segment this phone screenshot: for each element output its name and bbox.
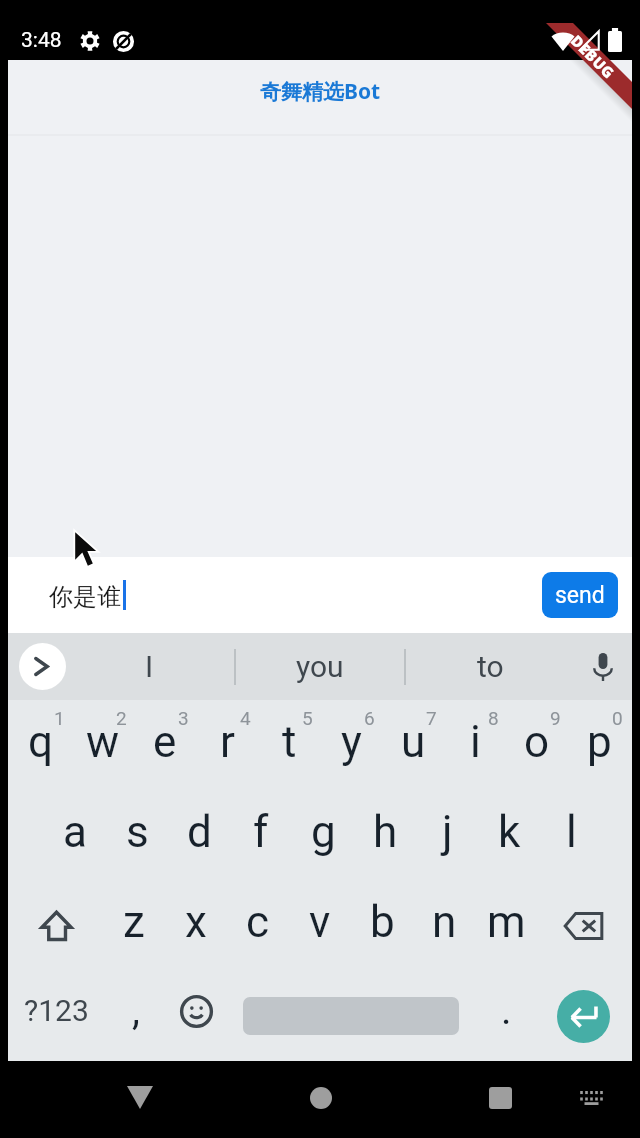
- button[interactable]: l: [540, 791, 602, 881]
- staticText: 8: [488, 707, 499, 729]
- button[interactable]: x: [165, 881, 227, 971]
- staticText: 6: [364, 707, 375, 729]
- staticText: u: [401, 716, 426, 768]
- staticText: 3:48: [21, 28, 62, 53]
- button[interactable]: u: [382, 700, 444, 791]
- staticText: d: [187, 806, 212, 858]
- staticText: 2: [116, 707, 127, 729]
- staticText: w: [86, 716, 120, 768]
- staticText: 奇舞精选Bot: [260, 77, 381, 106]
- button[interactable]: 你是谁: [49, 580, 542, 610]
- staticText: 5: [302, 707, 313, 729]
- button[interactable]: ?123: [10, 971, 103, 1061]
- staticText: z: [123, 896, 145, 948]
- button[interactable]: y: [320, 700, 382, 791]
- staticText: a: [63, 806, 87, 858]
- button[interactable]: e: [134, 700, 196, 791]
- staticText: .: [501, 987, 512, 1034]
- staticText: you: [296, 649, 344, 684]
- button[interactable]: Expand suggestions: [19, 643, 66, 690]
- staticText: o: [524, 716, 550, 768]
- button[interactable]: Switch keyboard: [566, 1073, 616, 1123]
- button[interactable]: h: [354, 791, 416, 881]
- staticText: l: [566, 806, 577, 858]
- button[interactable]: g: [292, 791, 354, 881]
- button[interactable]: q: [10, 700, 72, 791]
- button[interactable]: r: [196, 700, 258, 791]
- button[interactable]: d: [168, 791, 230, 881]
- staticText: j: [442, 806, 453, 858]
- button[interactable]: z: [103, 881, 165, 971]
- button[interactable]: m: [475, 881, 537, 971]
- button[interactable]: send: [542, 572, 618, 618]
- button[interactable]: Space: [227, 971, 475, 1061]
- button[interactable]: to: [406, 633, 574, 700]
- staticText: ?123: [24, 993, 89, 1028]
- button[interactable]: k: [478, 791, 540, 881]
- button[interactable]: v: [289, 881, 351, 971]
- button[interactable]: b: [351, 881, 413, 971]
- button[interactable]: Home: [291, 1073, 351, 1123]
- button[interactable]: w: [72, 700, 134, 791]
- staticText: i: [470, 716, 481, 768]
- staticText: c: [246, 896, 270, 948]
- staticText: k: [498, 806, 521, 858]
- staticText: s: [126, 806, 149, 858]
- button[interactable]: i: [444, 700, 506, 791]
- button[interactable]: Enter: [557, 990, 610, 1043]
- staticText: I: [145, 649, 154, 684]
- staticText: 你是谁: [49, 582, 121, 612]
- button[interactable]: c: [227, 881, 289, 971]
- button[interactable]: Recent apps: [470, 1073, 530, 1123]
- staticText: b: [370, 896, 395, 948]
- staticText: v: [309, 896, 331, 948]
- button[interactable]: t: [258, 700, 320, 791]
- button[interactable]: s: [106, 791, 168, 881]
- button[interactable]: you: [236, 633, 404, 700]
- staticText: 0: [612, 707, 623, 729]
- button[interactable]: n: [413, 881, 475, 971]
- button[interactable]: a: [43, 791, 106, 881]
- button[interactable]: j: [416, 791, 478, 881]
- staticText: p: [587, 716, 612, 768]
- button[interactable]: Voice input: [574, 633, 632, 700]
- staticText: y: [341, 716, 362, 768]
- staticText: t: [282, 716, 297, 768]
- staticText: f: [253, 806, 269, 858]
- staticText: to: [477, 649, 504, 684]
- staticText: n: [432, 896, 457, 948]
- staticText: 1: [54, 707, 65, 729]
- staticText: 3: [178, 707, 189, 729]
- button[interactable]: o: [506, 700, 568, 791]
- staticText: e: [153, 716, 177, 768]
- staticText: 4: [240, 707, 251, 729]
- staticText: 7: [426, 707, 437, 729]
- button[interactable]: Back: [110, 1072, 170, 1123]
- button[interactable]: Emoji: [165, 971, 227, 1061]
- button[interactable]: p: [568, 700, 630, 791]
- staticText: x: [185, 896, 207, 948]
- button[interactable]: Backspace: [537, 881, 630, 971]
- staticText: 9: [550, 707, 561, 729]
- button[interactable]: f: [230, 791, 292, 881]
- staticText: q: [28, 716, 54, 768]
- button[interactable]: .: [475, 971, 537, 1061]
- button[interactable]: Shift: [10, 881, 103, 971]
- button[interactable]: ,: [103, 971, 165, 1061]
- staticText: g: [311, 806, 336, 858]
- staticText: h: [373, 806, 398, 858]
- button[interactable]: I: [65, 633, 234, 700]
- staticText: r: [220, 716, 235, 768]
- staticText: send: [555, 582, 605, 609]
- staticText: ,: [132, 987, 140, 1034]
- staticText: m: [487, 896, 526, 948]
